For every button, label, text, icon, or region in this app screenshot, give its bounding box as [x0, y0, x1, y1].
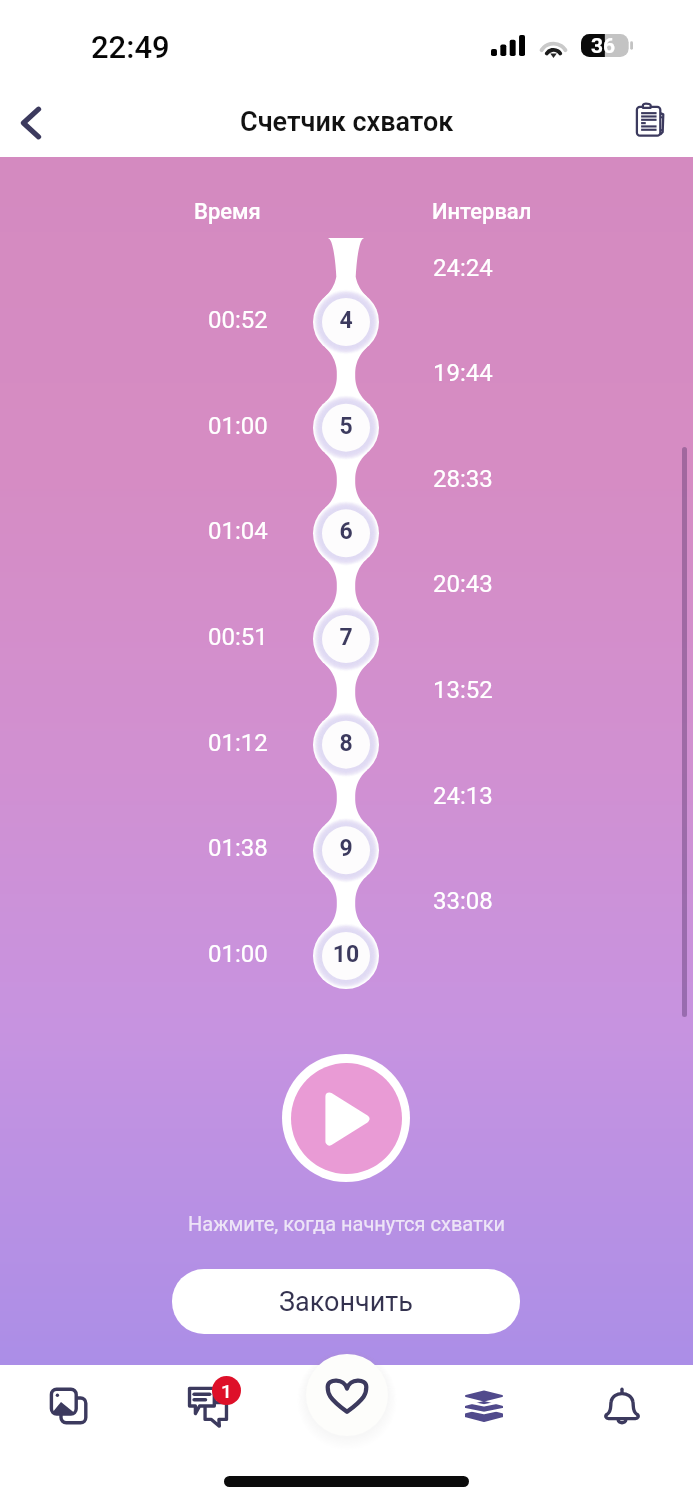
staticText: 1: [221, 1380, 232, 1402]
staticText: 4: [320, 307, 372, 334]
button[interactable]: History: [625, 96, 677, 148]
staticText: 01:12: [208, 729, 268, 757]
staticText: 00:51: [208, 623, 268, 651]
staticText: Время: [194, 199, 261, 225]
staticText: 01:38: [208, 834, 268, 862]
staticText: 24:24: [433, 254, 493, 282]
staticText: Счетчик схваток: [240, 106, 454, 138]
button[interactable]: Gallery: [31, 1368, 107, 1444]
staticText: 01:00: [208, 412, 268, 440]
button[interactable]: Layers: [446, 1368, 522, 1444]
staticText: 5: [320, 413, 372, 440]
staticText: 28:33: [433, 465, 493, 493]
staticText: Нажмите, когда начнутся схватки: [188, 1212, 506, 1235]
button[interactable]: Favourites: [306, 1354, 388, 1436]
staticText: 10: [320, 941, 372, 968]
staticText: 24:13: [433, 782, 493, 810]
staticText: 01:04: [208, 517, 268, 545]
button[interactable]: Закончить: [172, 1269, 520, 1334]
staticText: 7: [320, 624, 372, 651]
staticText: 22:49: [91, 29, 170, 65]
staticText: 33:08: [433, 887, 493, 915]
button[interactable]: Start timer: [282, 1054, 410, 1182]
button[interactable]: Back: [2, 94, 60, 152]
staticText: 00:52: [208, 306, 268, 334]
staticText: Закончить: [279, 1286, 413, 1318]
staticText: 20:43: [433, 570, 493, 598]
staticText: 19:44: [433, 359, 493, 387]
staticText: 01:00: [208, 940, 268, 968]
staticText: 9: [320, 835, 372, 862]
button[interactable]: Messages: [170, 1368, 246, 1444]
staticText: 36: [591, 34, 616, 59]
staticText: Интервал: [432, 199, 532, 225]
staticText: 6: [320, 518, 372, 545]
staticText: 8: [320, 730, 372, 757]
staticText: 13:52: [433, 676, 493, 704]
button[interactable]: Notifications: [584, 1368, 660, 1444]
